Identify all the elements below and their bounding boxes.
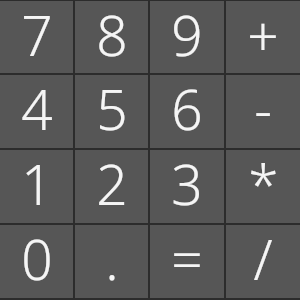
button[interactable]: -	[226, 75, 300, 148]
button[interactable]: 5	[75, 75, 148, 148]
staticText: +	[247, 0, 279, 69]
button[interactable]: 2	[75, 150, 148, 223]
button[interactable]: /	[226, 225, 300, 298]
staticText: 5	[96, 71, 128, 144]
staticText: 4	[21, 71, 53, 144]
staticText: 9	[171, 0, 203, 69]
staticText: /	[253, 221, 273, 294]
staticText: 8	[96, 0, 128, 69]
button[interactable]: 4	[0, 75, 73, 148]
button[interactable]: +	[226, 1, 300, 73]
staticText: 0	[21, 221, 53, 294]
staticText: 3	[171, 146, 203, 219]
button[interactable]: =	[150, 225, 224, 298]
staticText: 1	[21, 146, 53, 219]
button[interactable]: 0	[0, 225, 73, 298]
button[interactable]: 9	[150, 1, 224, 73]
staticText: 6	[171, 71, 203, 144]
staticText: 2	[96, 146, 128, 219]
staticText: *	[248, 146, 279, 219]
button[interactable]: 7	[0, 1, 73, 73]
button[interactable]: .	[75, 225, 148, 298]
button[interactable]: 8	[75, 1, 148, 73]
staticText: .	[105, 221, 119, 294]
button[interactable]: 3	[150, 150, 224, 223]
staticText: =	[171, 221, 203, 294]
staticText: 7	[21, 0, 53, 69]
button[interactable]: 6	[150, 75, 224, 148]
staticText: -	[254, 71, 272, 144]
button[interactable]: 1	[0, 150, 73, 223]
button[interactable]: *	[226, 150, 300, 223]
